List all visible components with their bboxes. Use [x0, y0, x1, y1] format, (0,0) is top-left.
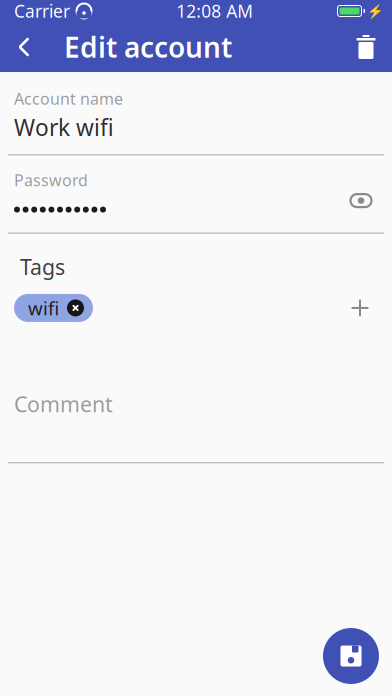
staticText: Account name [14, 88, 123, 109]
staticText: ⚡ [367, 3, 384, 19]
staticText: Tags [20, 253, 65, 281]
button[interactable]: wifi [14, 294, 93, 322]
staticText: Work wifi [14, 112, 114, 142]
button[interactable]: Delete [340, 22, 392, 72]
button[interactable]: Back [0, 22, 48, 72]
staticText: Carrier [14, 0, 70, 22]
staticText: Password [14, 169, 88, 190]
button[interactable]: Show password [344, 187, 378, 215]
button[interactable]: Save [323, 628, 379, 684]
button[interactable]: Add tag [342, 292, 378, 324]
staticText: wifi [28, 295, 59, 320]
staticText: Comment [14, 390, 113, 418]
staticText: 12:08 AM [176, 0, 253, 22]
staticText: Edit account [64, 28, 232, 66]
